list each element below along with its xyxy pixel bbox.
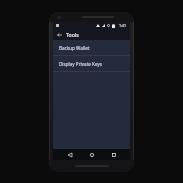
button[interactable]: Navigate up (55, 30, 64, 39)
button[interactable]: Home (86, 149, 97, 160)
button[interactable]: Backup Wallet (53, 40, 130, 55)
staticText: Tools (66, 31, 79, 38)
staticText: Display Private Keys (59, 61, 102, 67)
button[interactable]: Display Private Keys (53, 56, 130, 71)
button[interactable]: Back (64, 149, 75, 160)
staticText: Backup Wallet (59, 45, 90, 51)
button[interactable]: Recent apps (108, 149, 119, 160)
staticText: 1:41 (119, 23, 127, 28)
